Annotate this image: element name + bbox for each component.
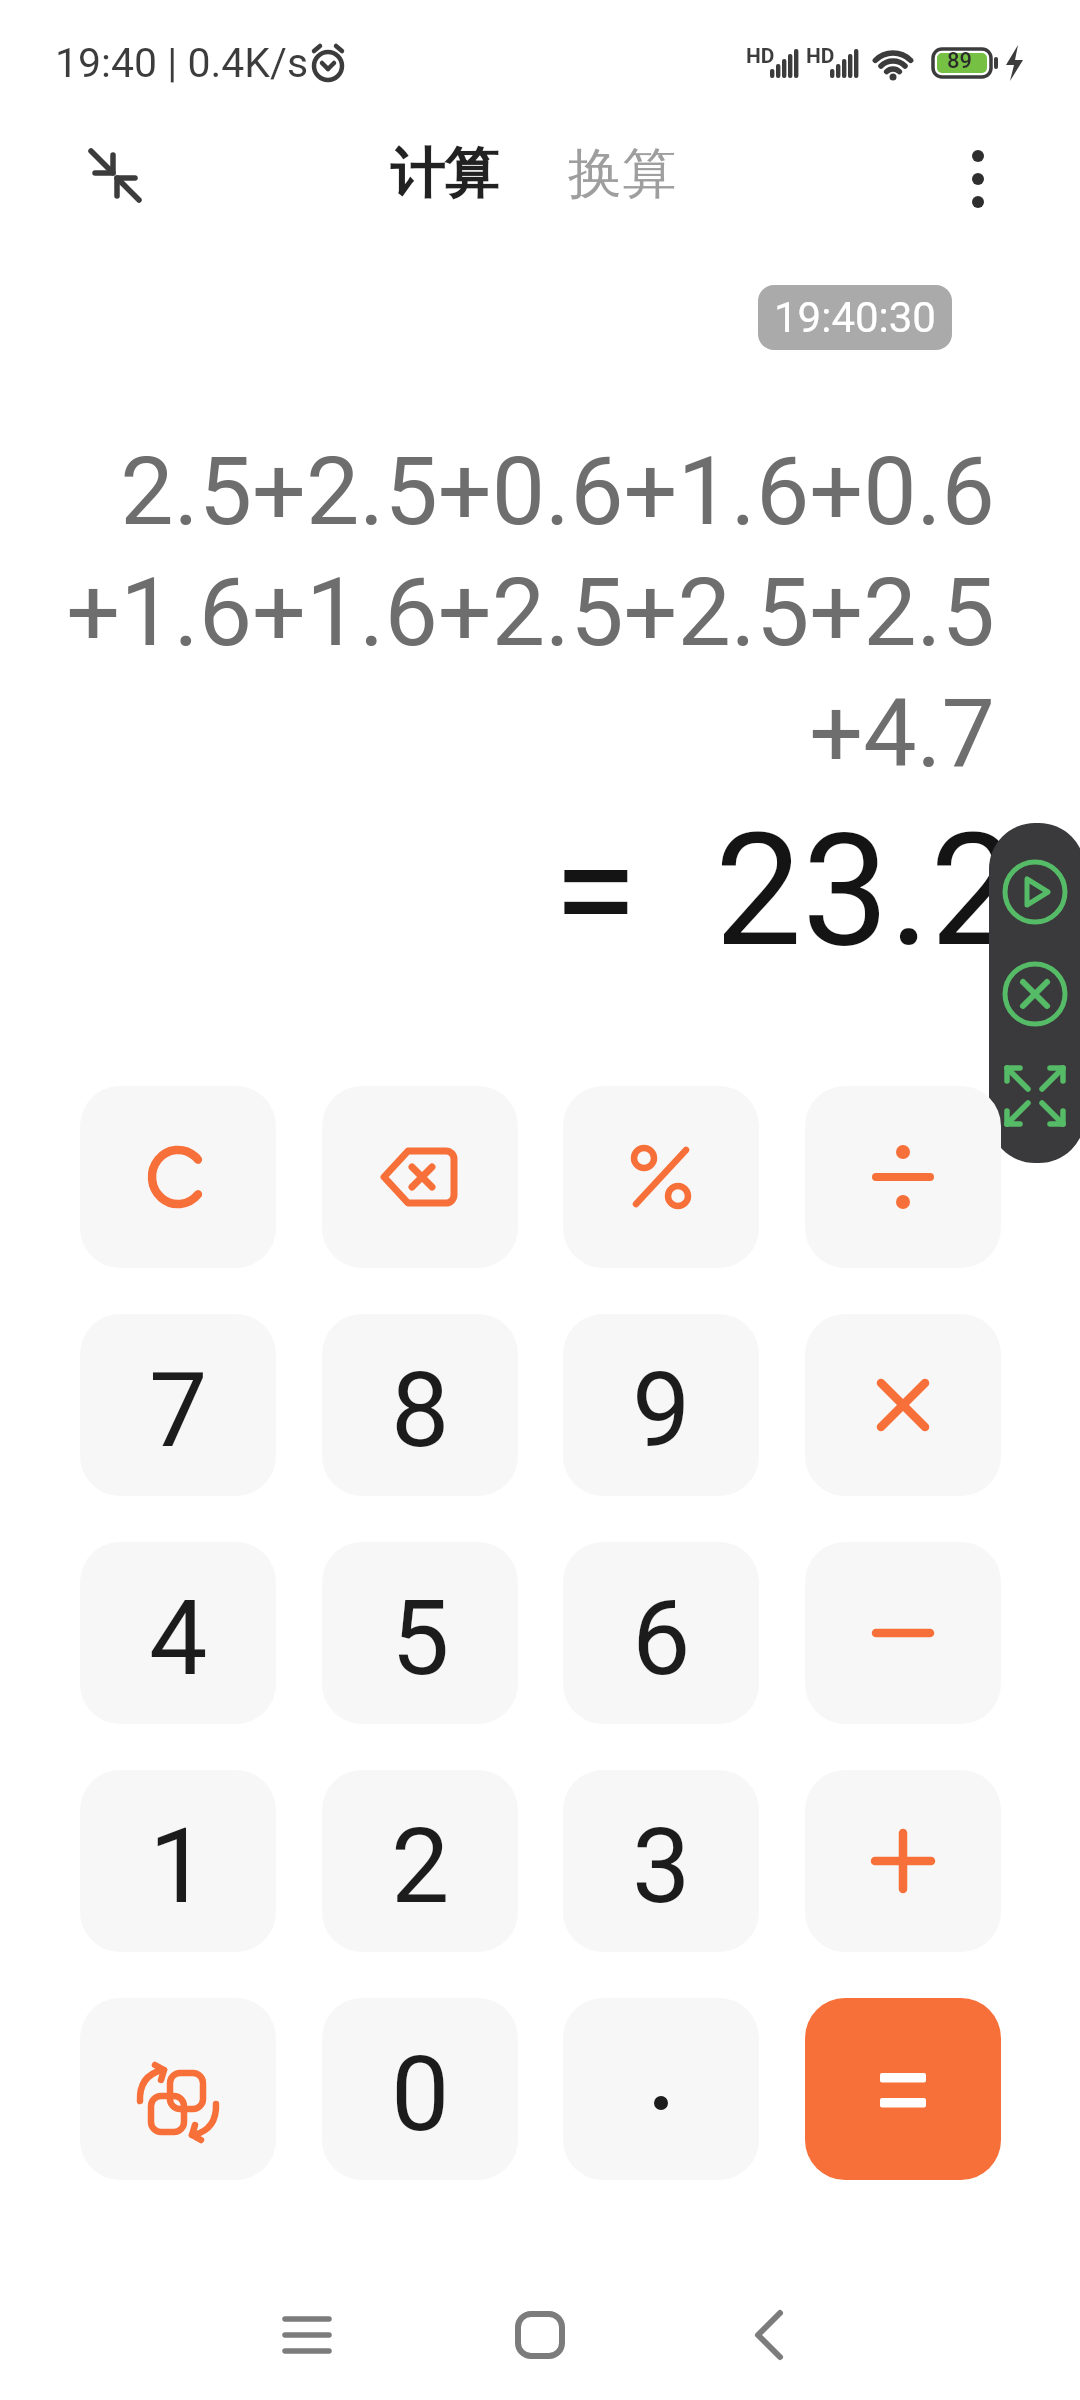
- staticText: +4.7: [0, 678, 995, 789]
- staticText: 19:40:30: [774, 293, 936, 342]
- button[interactable]: [805, 1086, 1001, 1268]
- button[interactable]: 7: [80, 1314, 276, 1496]
- staticText: 8: [391, 1350, 450, 1472]
- button[interactable]: [805, 1998, 1001, 2180]
- button[interactable]: 0: [322, 1998, 518, 2180]
- staticText: 3: [632, 1806, 691, 1928]
- button[interactable]: [322, 1086, 518, 1268]
- staticText: HD: [806, 44, 835, 69]
- button[interactable]: [563, 1998, 759, 2180]
- staticText: HD: [746, 44, 775, 69]
- staticText: 1: [149, 1806, 208, 1928]
- button[interactable]: 5: [322, 1542, 518, 1724]
- button[interactable]: [500, 2295, 580, 2375]
- button[interactable]: [80, 1998, 276, 2180]
- staticText: 6: [632, 1578, 691, 1700]
- staticText: +1.6+1.6+2.5+2.5+2.5: [0, 557, 995, 668]
- button[interactable]: [997, 956, 1073, 1032]
- button[interactable]: 1: [80, 1770, 276, 1952]
- button[interactable]: [563, 1086, 759, 1268]
- button[interactable]: [950, 140, 1006, 216]
- button[interactable]: 3: [563, 1770, 759, 1952]
- button[interactable]: [805, 1770, 1001, 1952]
- staticText: 19:40 | 0.4K/s: [55, 39, 309, 87]
- staticText: 0: [391, 2034, 450, 2156]
- button[interactable]: [80, 1086, 276, 1268]
- staticText: 9: [632, 1350, 691, 1472]
- staticText: 5: [391, 1578, 450, 1700]
- staticText: 2: [391, 1806, 450, 1928]
- button[interactable]: [731, 2295, 811, 2375]
- button[interactable]: [997, 854, 1073, 930]
- staticText: = 23.2: [0, 800, 1017, 982]
- staticText: 换算: [568, 140, 676, 208]
- staticText: 计算: [390, 140, 498, 208]
- button[interactable]: 8: [322, 1314, 518, 1496]
- staticText: 2.5+2.5+0.6+1.6+0.6: [0, 436, 995, 547]
- button[interactable]: 6: [563, 1542, 759, 1724]
- button[interactable]: [76, 138, 152, 214]
- button[interactable]: 计算: [390, 140, 498, 208]
- button[interactable]: 2: [322, 1770, 518, 1952]
- button[interactable]: [805, 1542, 1001, 1724]
- staticText: 4: [149, 1578, 208, 1700]
- button[interactable]: 19:40:30: [758, 285, 952, 350]
- button[interactable]: [267, 2295, 347, 2375]
- staticText: 7: [149, 1350, 208, 1472]
- button[interactable]: [997, 1058, 1073, 1134]
- button[interactable]: 换算: [568, 140, 676, 208]
- button[interactable]: [805, 1314, 1001, 1496]
- button[interactable]: 4: [80, 1542, 276, 1724]
- button[interactable]: 9: [563, 1314, 759, 1496]
- staticText: 89: [947, 48, 973, 74]
